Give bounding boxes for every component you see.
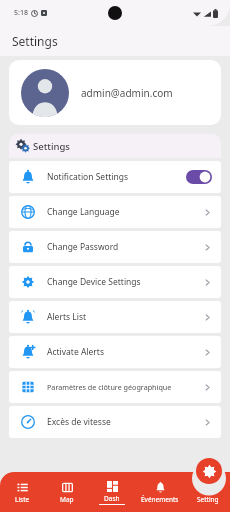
button[interactable]: Excès de vitesse bbox=[9, 406, 221, 438]
staticText: Change Password bbox=[47, 241, 199, 253]
staticText: admin@admin.com bbox=[81, 86, 173, 100]
staticText: Dash bbox=[104, 494, 120, 503]
staticText: Activate Alerts bbox=[47, 346, 199, 358]
button[interactable]: Alerts List bbox=[9, 301, 221, 333]
staticText: Map bbox=[60, 495, 74, 504]
button[interactable]: Activate Alerts bbox=[9, 336, 221, 368]
staticText: Paramètres de clôture géographique bbox=[47, 382, 199, 392]
staticText: Liste bbox=[15, 495, 30, 504]
staticText: Change Language bbox=[47, 206, 199, 218]
staticText: 5:18 bbox=[14, 8, 28, 18]
staticText: Alerts List bbox=[47, 311, 199, 323]
staticText: Settings bbox=[33, 140, 70, 153]
button[interactable]: Setting bbox=[185, 472, 230, 512]
staticText: Notification Settings bbox=[47, 171, 129, 183]
button[interactable]: Map bbox=[44, 472, 89, 512]
staticText: Excès de vitesse bbox=[47, 416, 199, 428]
button[interactable]: Dash bbox=[89, 472, 134, 512]
button[interactable]: admin@admin.com bbox=[9, 60, 221, 125]
button[interactable]: Paramètres de clôture géographique bbox=[9, 371, 221, 403]
button[interactable]: Notification toggle bbox=[186, 170, 212, 184]
button[interactable]: Change Password bbox=[9, 231, 221, 263]
button[interactable]: Change Language bbox=[9, 196, 221, 228]
staticText: Change Device Settings bbox=[47, 276, 199, 288]
staticText: Événements bbox=[141, 495, 179, 504]
button[interactable]: Notification Settings bbox=[9, 161, 221, 193]
button[interactable]: Liste bbox=[0, 472, 44, 512]
button[interactable]: Settings bbox=[196, 458, 222, 484]
staticText: Settings bbox=[12, 33, 58, 49]
button[interactable]: Événements bbox=[134, 472, 185, 512]
staticText: Setting bbox=[197, 495, 219, 504]
button[interactable]: Change Device Settings bbox=[9, 266, 221, 298]
